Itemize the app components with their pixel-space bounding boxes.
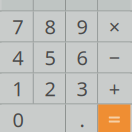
button[interactable]: +: [98, 73, 130, 103]
staticText: ×: [109, 13, 120, 40]
button[interactable]: Equals: [98, 104, 130, 132]
staticText: 5: [44, 44, 55, 71]
staticText: .: [80, 106, 85, 132]
button[interactable]: 4: [2, 42, 34, 72]
button[interactable]: −: [98, 42, 130, 72]
button[interactable]: 7: [2, 11, 34, 41]
staticText: +: [109, 75, 120, 102]
staticText: 7: [12, 13, 23, 40]
button[interactable]: 2: [34, 73, 66, 103]
staticText: 9: [77, 13, 88, 40]
staticText: 3: [77, 75, 88, 102]
button[interactable]: 5: [34, 42, 66, 72]
staticText: 4: [12, 44, 23, 71]
staticText: 6: [77, 44, 88, 71]
staticText: 0: [13, 106, 24, 132]
staticText: 8: [44, 13, 55, 40]
staticText: −: [109, 44, 120, 71]
staticText: 2: [44, 75, 55, 102]
button[interactable]: .: [66, 104, 98, 132]
staticText: 1: [12, 75, 23, 102]
button[interactable]: 6: [66, 42, 98, 72]
button[interactable]: 1: [2, 73, 34, 103]
button[interactable]: 9: [66, 11, 98, 41]
button[interactable]: 8: [34, 11, 66, 41]
button[interactable]: ×: [98, 11, 130, 41]
button[interactable]: 0: [2, 104, 66, 132]
button[interactable]: 3: [66, 73, 98, 103]
